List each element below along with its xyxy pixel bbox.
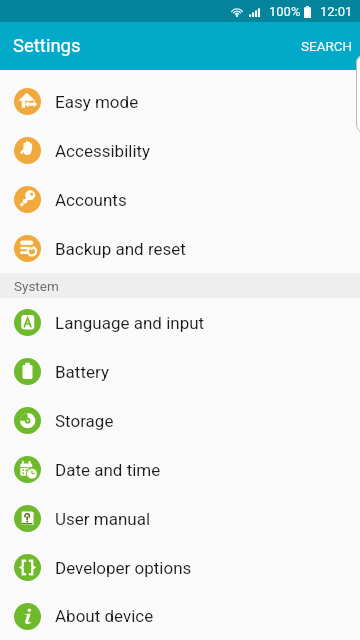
button[interactable]: Backup and reset: [0, 224, 360, 273]
staticText: Accessibility: [55, 141, 151, 161]
button[interactable]: Accounts: [0, 175, 360, 224]
staticText: Developer options: [55, 558, 192, 578]
button[interactable]: Date and time: [0, 445, 360, 494]
button[interactable]: Language and input: [0, 298, 360, 347]
staticText: Storage: [55, 411, 114, 431]
staticText: Battery: [55, 362, 109, 382]
staticText: About device: [55, 606, 154, 626]
staticText: 100%: [269, 4, 301, 19]
staticText: Language and input: [55, 313, 205, 333]
staticText: SEARCH: [301, 38, 353, 54]
button[interactable]: SEARCH: [287, 26, 360, 66]
button[interactable]: Battery: [0, 347, 360, 396]
button[interactable]: About device: [0, 592, 360, 640]
staticText: 12:01: [320, 4, 353, 19]
staticText: System: [14, 278, 59, 294]
button[interactable]: User manual: [0, 494, 360, 543]
staticText: Easy mode: [55, 92, 139, 112]
button[interactable]: Easy mode: [0, 77, 360, 126]
staticText: Date and time: [55, 460, 161, 480]
staticText: Accounts: [55, 190, 127, 210]
button[interactable]: Storage: [0, 396, 360, 445]
button[interactable]: Accessibility: [0, 126, 360, 175]
button[interactable]: Developer options: [0, 543, 360, 592]
staticText: Settings: [13, 35, 81, 57]
staticText: User manual: [55, 509, 151, 529]
staticText: Backup and reset: [55, 239, 186, 259]
